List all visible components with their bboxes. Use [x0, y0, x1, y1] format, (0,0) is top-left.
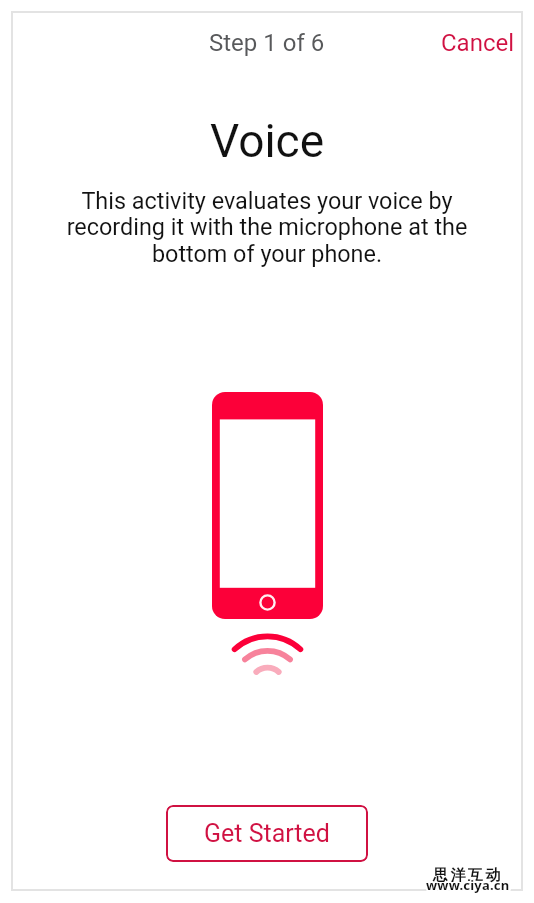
staticText: Voice — [11, 114, 523, 168]
staticText: 思洋互动 — [433, 868, 503, 887]
staticText: www.ciya.cn — [425, 876, 509, 894]
staticText: 思洋互动 — [435, 865, 505, 884]
button[interactable]: Get Started — [166, 805, 368, 862]
staticText: www.ciya.cn — [426, 878, 510, 896]
staticText: www.ciya.cn — [425, 878, 509, 896]
staticText: 思洋互动 — [433, 865, 503, 884]
staticText: Cancel — [441, 29, 515, 57]
staticText: 思洋互动 — [432, 866, 502, 885]
button[interactable]: Cancel — [429, 21, 527, 65]
staticText: 思洋互动 — [435, 866, 505, 885]
staticText: www.ciya.cn — [428, 876, 512, 894]
staticText: 思洋互动 — [435, 868, 505, 887]
staticText: www.ciya.cn — [426, 875, 510, 893]
staticText: 思洋互动 — [432, 865, 502, 884]
staticText: 思洋互动 — [433, 866, 503, 885]
staticText: Step 1 of 6 — [209, 29, 325, 57]
staticText: Get Started — [204, 819, 330, 848]
staticText: 思洋互动 — [432, 868, 502, 887]
staticText: www.ciya.cn — [425, 875, 509, 893]
staticText: www.ciya.cn — [428, 878, 512, 896]
staticText: This activity evaluates your voice by re… — [57, 187, 477, 268]
staticText: www.ciya.cn — [428, 875, 512, 893]
staticText: www.ciya.cn — [426, 876, 510, 894]
